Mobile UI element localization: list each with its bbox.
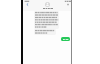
button[interactable] <box>61 37 70 41</box>
button[interactable] <box>34 29 56 35</box>
button[interactable]: Video call <box>66 2 71 7</box>
button[interactable]: Back <box>25 2 30 7</box>
button[interactable] <box>34 11 59 29</box>
